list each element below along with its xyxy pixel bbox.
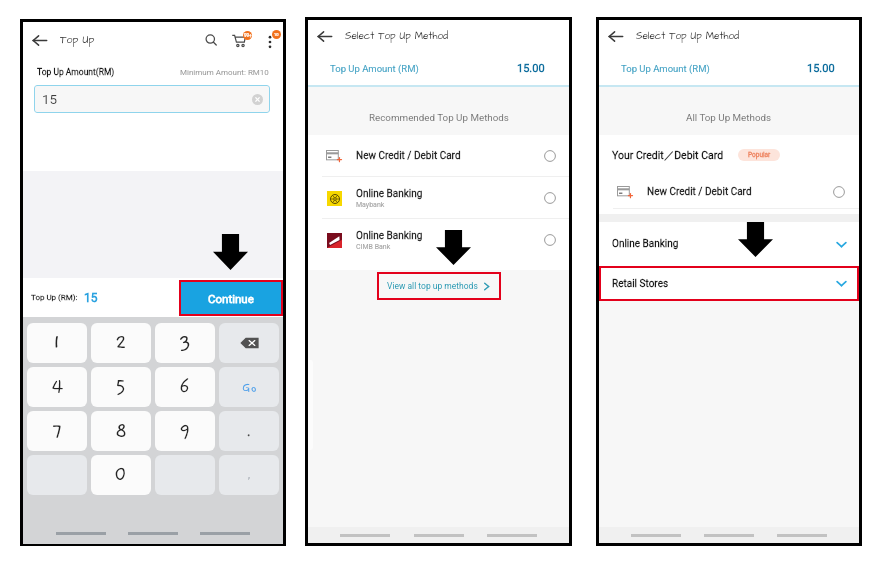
staticText: 9 <box>179 420 191 443</box>
button[interactable]: Back <box>602 23 628 49</box>
staticText: 1 <box>52 332 62 355</box>
staticText: 10 <box>274 32 279 37</box>
staticText: View all top up methods <box>387 281 478 291</box>
staticText: 15.00 <box>517 62 545 75</box>
staticText: 99+ <box>244 33 252 38</box>
staticText: Online Banking <box>356 188 423 200</box>
button[interactable]: Online Banking <box>308 177 569 218</box>
staticText: 15 <box>84 291 98 305</box>
staticText: Go <box>242 380 257 394</box>
button[interactable]: 4 <box>27 367 87 407</box>
staticText: Maybank <box>356 201 385 209</box>
button[interactable] <box>219 323 279 363</box>
staticText: 2 <box>115 332 128 355</box>
button[interactable]: Retail Stores <box>599 266 859 301</box>
button[interactable]: 7 <box>27 411 87 451</box>
button[interactable]: 6 <box>155 367 215 407</box>
button[interactable]: 15 <box>34 85 270 113</box>
staticText: Select Top Up Method <box>345 29 449 43</box>
button[interactable]: Clear <box>252 94 263 105</box>
staticText: 15.00 <box>807 62 835 75</box>
staticText: 3 <box>179 332 192 355</box>
staticText: New Credit / Debit Card <box>356 150 461 162</box>
staticText: Minimum Amount: RM10 <box>180 68 269 77</box>
staticText: Online Banking <box>612 238 679 250</box>
button[interactable]: 5 <box>91 367 151 407</box>
staticText: 15 <box>42 91 58 107</box>
staticText: 0 <box>114 464 128 487</box>
staticText: Popular <box>748 151 771 159</box>
staticText: Retail Stores <box>612 278 669 290</box>
button[interactable]: Go <box>219 367 279 407</box>
button[interactable]: Continue <box>181 282 281 314</box>
button[interactable]: Back <box>26 27 52 53</box>
staticText: CIMB Bank <box>356 243 391 251</box>
button[interactable]: New Credit / Debit Card <box>308 135 569 176</box>
staticText: New Credit / Debit Card <box>647 186 833 198</box>
button[interactable]: 9 <box>155 411 215 451</box>
staticText: Top Up Amount (RM) <box>330 63 419 74</box>
staticText: 4 <box>51 376 64 399</box>
button[interactable]: New Credit / Debit Card <box>599 175 859 208</box>
button[interactable]: Back <box>311 23 337 49</box>
staticText: Recommended Top Up Methods <box>369 112 509 123</box>
staticText: 8 <box>115 420 128 443</box>
staticText: , <box>248 469 250 481</box>
button[interactable]: Cart <box>231 29 253 51</box>
button[interactable]: Search <box>200 29 222 51</box>
staticText: . <box>247 424 251 439</box>
button[interactable]: . <box>219 411 279 451</box>
staticText: Online Banking <box>356 230 423 242</box>
button[interactable]: Online Banking <box>308 219 569 260</box>
button[interactable]: 8 <box>91 411 151 451</box>
staticText: Your Credit／Debit Card <box>612 149 724 162</box>
staticText: 5 <box>115 376 127 399</box>
button[interactable]: More options <box>261 30 281 50</box>
staticText: 6 <box>179 376 191 399</box>
staticText: Top Up <box>60 33 95 48</box>
staticText: Select Top Up Method <box>636 29 740 43</box>
staticText: 7 <box>52 420 63 443</box>
button[interactable]: 2 <box>91 323 151 363</box>
button[interactable]: Online Banking <box>599 222 859 266</box>
button[interactable]: 3 <box>155 323 215 363</box>
staticText: Top Up Amount(RM) <box>37 67 115 77</box>
staticText: Continue <box>208 292 254 305</box>
staticText: All Top Up Methods <box>686 112 772 123</box>
staticText: Top Up Amount (RM) <box>621 63 710 74</box>
button[interactable]: 1 <box>27 323 87 363</box>
staticText: Top Up (RM): <box>31 293 78 302</box>
button[interactable]: View all top up methods <box>377 272 501 300</box>
button[interactable]: 0 <box>91 455 151 495</box>
